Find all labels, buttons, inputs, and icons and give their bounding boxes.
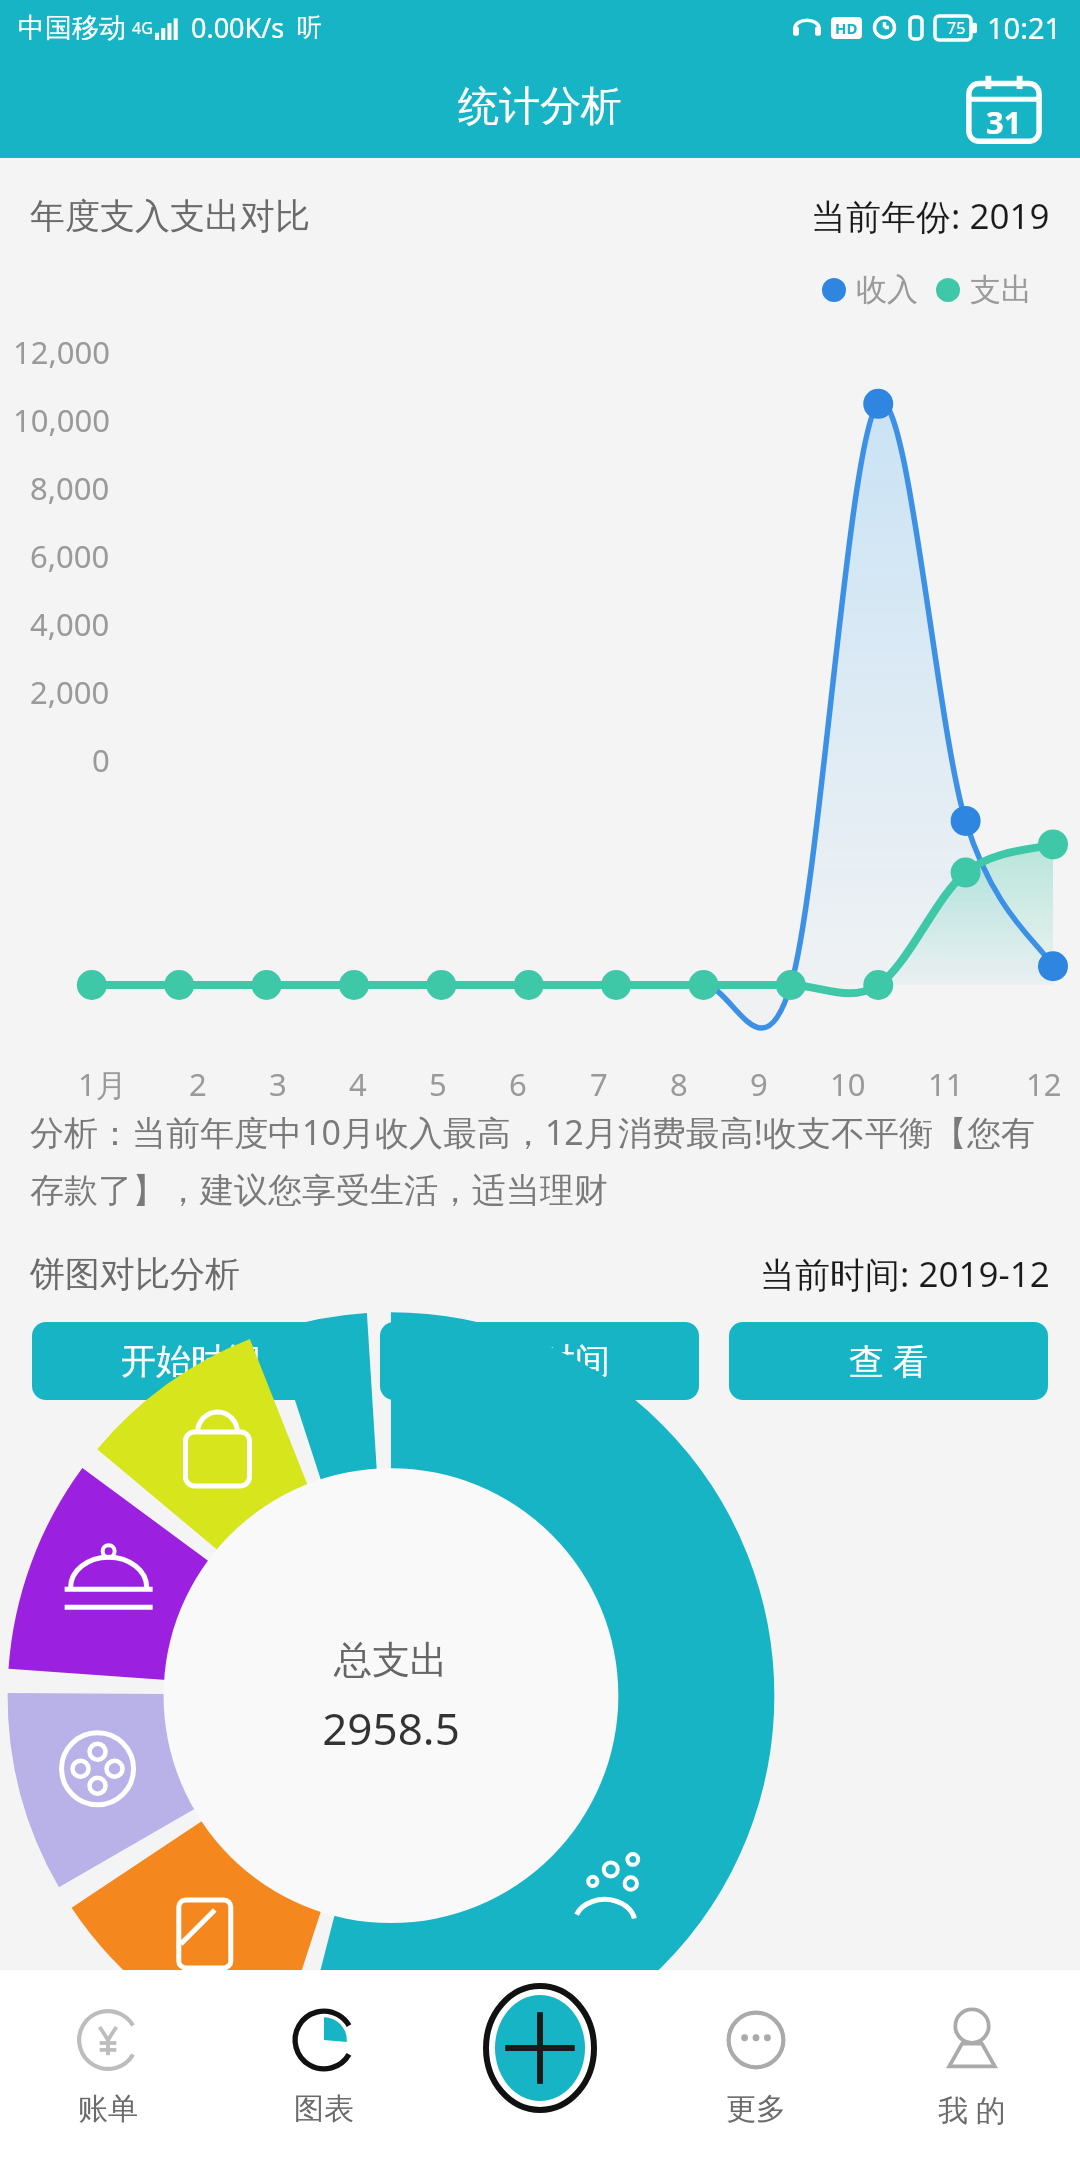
staticText: 更多 (726, 2090, 786, 2128)
button[interactable]: 账单 (0, 1970, 216, 2160)
staticText: 2,000 (30, 671, 110, 713)
staticText: 当前时间: 2019-12 (760, 1250, 1050, 1298)
staticText: 31 (986, 101, 1022, 143)
staticText: 支出 (970, 270, 1032, 309)
button[interactable]: 更多 (648, 1970, 864, 2160)
staticText: 当前年份: 2019 (811, 192, 1050, 240)
staticText: 图表 (294, 2090, 354, 2128)
staticText: 开始时间 (121, 1339, 261, 1383)
staticText: 6,000 (30, 535, 110, 577)
staticText: 账单 (78, 2090, 138, 2128)
staticText: 4 (349, 1063, 367, 1105)
staticText: 10 (830, 1063, 866, 1105)
staticText: 4,000 (30, 603, 110, 645)
staticText: 0.00K/s (191, 9, 285, 46)
button[interactable]: Add (484, 1984, 596, 2112)
staticText: 2 (189, 1063, 207, 1105)
staticText: 6 (509, 1063, 527, 1105)
staticText: HD (835, 18, 858, 38)
staticText: 8 (670, 1063, 688, 1105)
staticText: 10,000 (13, 399, 110, 441)
staticText: 11 (928, 1063, 964, 1105)
staticText: 12 (1026, 1063, 1062, 1105)
staticText: 收入 (856, 270, 918, 309)
staticText: 查 看 (849, 1337, 929, 1385)
staticText: 3 (269, 1063, 287, 1105)
staticText: 75 (947, 17, 966, 39)
button[interactable]: 我 的 (864, 1970, 1080, 2160)
staticText: 总支出 (334, 1636, 448, 1684)
staticText: 统计分析 (458, 81, 622, 133)
button[interactable]: 结束时间 (380, 1322, 699, 1400)
staticText: 7 (590, 1063, 608, 1105)
staticText: 12,000 (13, 331, 110, 373)
button[interactable]: 图表 (216, 1970, 432, 2160)
staticText: 饼图对比分析 (30, 1252, 240, 1296)
staticText: 0 (92, 739, 110, 781)
button[interactable]: Calendar (956, 59, 1052, 155)
staticText: 2958.5 (322, 1698, 460, 1758)
staticText: 我 的 (938, 2089, 1006, 2130)
staticText: 9 (750, 1063, 768, 1105)
button[interactable]: 查 看 (729, 1322, 1048, 1400)
staticText: 5 (429, 1063, 447, 1105)
staticText: 听 (297, 12, 322, 43)
staticText: 结束时间 (470, 1339, 610, 1383)
staticText: 中国移动 (18, 11, 126, 45)
staticText: 8,000 (30, 467, 110, 509)
staticText: 年度支入支出对比 (30, 194, 310, 238)
staticText: 1月 (78, 1063, 127, 1105)
staticText: 分析：当前年度中10月收入最高，12月消费最高!收支不平衡【您有存款了】，建议您… (30, 1109, 1050, 1212)
button[interactable]: 开始时间 (32, 1322, 350, 1400)
staticText: 10:21 (987, 8, 1062, 47)
staticText: 4G (132, 17, 153, 39)
